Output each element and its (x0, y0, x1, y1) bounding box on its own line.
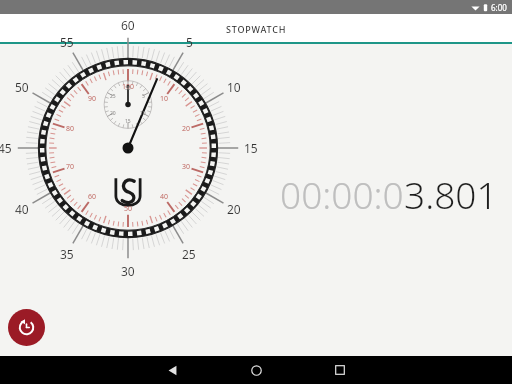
staticText: 40 (160, 192, 169, 202)
staticText: 6:00 (491, 2, 507, 13)
staticText: 50 (124, 204, 133, 214)
staticText: 35 (60, 246, 74, 262)
staticText: 100 (122, 82, 135, 92)
button[interactable]: Lap history (8, 309, 45, 346)
button[interactable]: STOPWATCH (0, 14, 512, 44)
staticText: 00:00:0 (280, 169, 404, 219)
staticText: 30 (121, 263, 135, 279)
staticText: 90 (88, 94, 97, 104)
staticText: 5 (186, 34, 193, 50)
staticText: 20 (110, 110, 116, 117)
staticText: 20 (182, 124, 191, 134)
staticText: 40 (15, 201, 29, 217)
staticText: 50 (15, 79, 29, 95)
staticText: 15 (125, 118, 131, 125)
staticText: STOPWATCH (226, 23, 287, 35)
staticText: 25 (110, 93, 116, 100)
staticText: 70 (66, 162, 75, 172)
staticText: 10 (160, 94, 169, 104)
button[interactable]: Recent apps (320, 356, 360, 384)
staticText: 60 (88, 192, 97, 202)
staticText: 15 (244, 140, 258, 156)
staticText: 20 (227, 201, 241, 217)
button[interactable]: Home (236, 356, 276, 384)
staticText: 30 (125, 85, 131, 92)
staticText: 30 (182, 162, 191, 172)
staticText: 10 (227, 79, 241, 95)
staticText: 10 (140, 110, 146, 117)
staticText: 25 (182, 246, 196, 262)
staticText: 55 (60, 34, 74, 50)
staticText: 3.801 (404, 169, 498, 219)
staticText: 5 (142, 93, 145, 100)
staticText: 80 (66, 124, 75, 134)
button[interactable]: Back (152, 356, 192, 384)
staticText: 60 (121, 17, 135, 33)
staticText: 45 (0, 140, 12, 156)
